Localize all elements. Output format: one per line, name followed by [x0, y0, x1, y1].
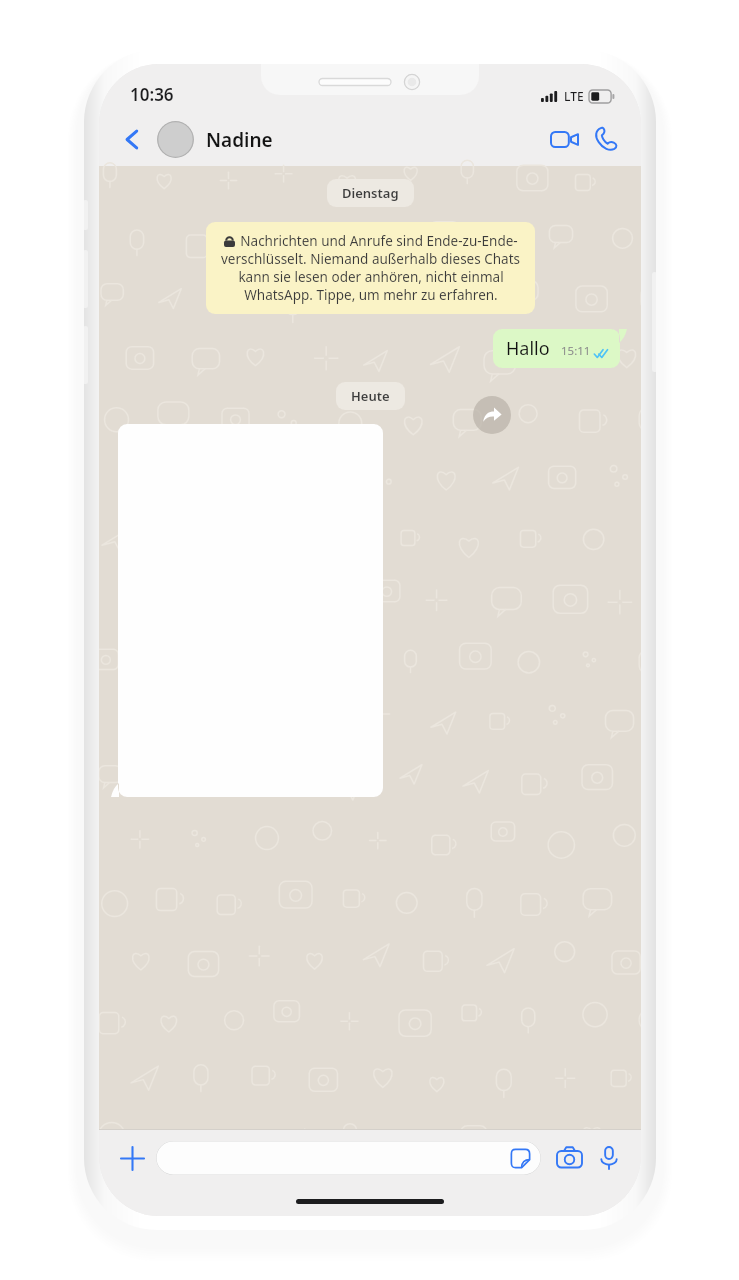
- button[interactable]: Stickers: [156, 1141, 541, 1175]
- button[interactable]: Voice call: [585, 118, 627, 160]
- staticText: Nadine: [206, 127, 273, 153]
- button[interactable]: Attach: [113, 1139, 151, 1177]
- staticText: verschlüsselt. Niemand außerhalb dieses …: [221, 250, 520, 268]
- staticText: kann sie lesen oder anhören, nicht einma…: [238, 268, 504, 286]
- button[interactable]: Voice message: [589, 1138, 629, 1178]
- button[interactable]: Dienstag: [327, 179, 414, 207]
- button[interactable]: Hallo: [493, 329, 627, 368]
- button[interactable]: Forward: [473, 396, 511, 434]
- staticText: Heute: [351, 387, 390, 405]
- staticText: Dienstag: [342, 184, 399, 202]
- button[interactable]: Heute: [336, 382, 405, 410]
- staticText: 15:11: [561, 343, 591, 359]
- button[interactable]: Camera: [549, 1138, 589, 1178]
- button[interactable]: [111, 424, 383, 797]
- staticText: Nachrichten und Anrufe sind Ende-zu-Ende…: [240, 232, 518, 250]
- staticText: WhatsApp. Tippe, um mehr zu erfahren.: [244, 286, 498, 304]
- staticText: 10:36: [130, 83, 174, 106]
- button[interactable]: Video call: [543, 118, 585, 160]
- button[interactable]: Stickers: [509, 1147, 532, 1170]
- staticText: LTE: [564, 88, 584, 104]
- button[interactable]: Nadine: [157, 121, 543, 158]
- button[interactable]: Back: [113, 120, 151, 158]
- staticText: Hallo: [506, 336, 550, 361]
- button[interactable]: Nachrichten und Anrufe sind Ende-zu-Ende…: [206, 222, 535, 314]
